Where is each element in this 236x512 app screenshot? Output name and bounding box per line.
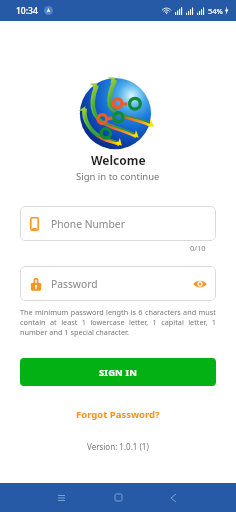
button[interactable]: Back bbox=[155, 483, 191, 512]
staticText: 0/10 bbox=[190, 243, 206, 253]
staticText: Sign in to continue bbox=[76, 170, 160, 183]
staticText: 54% bbox=[208, 6, 223, 16]
staticText: 10:34 bbox=[16, 5, 38, 17]
staticText: Password bbox=[51, 277, 98, 291]
button[interactable]: Forgot Password? bbox=[70, 405, 166, 424]
staticText: Welcome bbox=[91, 152, 146, 168]
button[interactable]: SIGN IN bbox=[20, 358, 216, 386]
button[interactable]: Show password bbox=[186, 270, 214, 298]
button[interactable]: Password bbox=[20, 266, 216, 301]
staticText: The minimum password length is 6 charact… bbox=[20, 307, 216, 337]
staticText: Forgot Password? bbox=[76, 408, 160, 421]
staticText: SIGN IN bbox=[99, 366, 138, 379]
button[interactable]: Recent apps bbox=[43, 483, 79, 512]
button[interactable]: Phone Number bbox=[20, 206, 216, 241]
staticText: Version: 1.0.1 (1) bbox=[87, 441, 149, 452]
button[interactable]: Home bbox=[100, 483, 136, 512]
staticText: Phone Number bbox=[51, 217, 125, 231]
